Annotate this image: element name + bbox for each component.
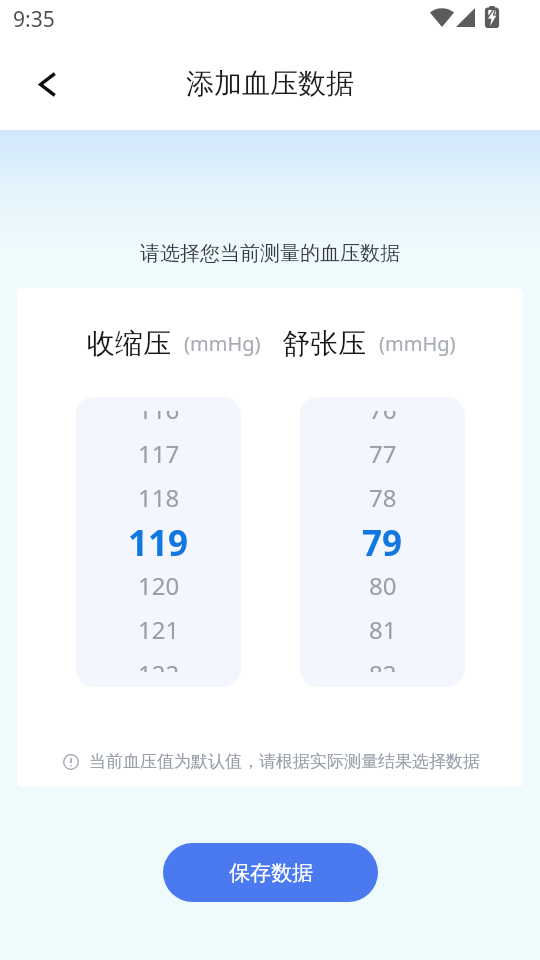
staticText: 请选择您当前测量的血压数据 xyxy=(140,241,400,266)
staticText: 添加血压数据 xyxy=(186,66,354,101)
staticText: 舒张压 xyxy=(282,326,366,361)
staticText: 119 xyxy=(128,519,189,563)
staticText: 81 xyxy=(369,613,397,646)
staticText: 保存数据 xyxy=(229,860,313,886)
staticText: 82 xyxy=(369,657,397,672)
staticText: 117 xyxy=(138,437,180,470)
button[interactable]: 收缩压选择器 xyxy=(76,397,241,687)
staticText: (mmHg) xyxy=(379,330,456,357)
button[interactable]: 保存数据 xyxy=(163,843,378,902)
staticText: 9:35 xyxy=(13,5,55,34)
staticText: 77 xyxy=(369,437,397,470)
button[interactable]: 舒张压选择器 xyxy=(300,397,465,687)
staticText: 80 xyxy=(369,569,397,602)
staticText: 76 xyxy=(369,411,397,426)
staticText: 116 xyxy=(138,411,180,426)
staticText: 121 xyxy=(138,613,180,646)
staticText: 收缩压 xyxy=(87,326,171,361)
staticText: 120 xyxy=(138,569,180,602)
staticText: 当前血压值为默认值，请根据实际测量结果选择数据 xyxy=(89,751,480,772)
staticText: 122 xyxy=(138,657,180,672)
staticText: 78 xyxy=(369,481,397,514)
staticText: 118 xyxy=(138,481,180,514)
staticText: (mmHg) xyxy=(184,330,261,357)
staticText: 79 xyxy=(362,519,403,563)
button[interactable]: Back xyxy=(20,57,74,111)
